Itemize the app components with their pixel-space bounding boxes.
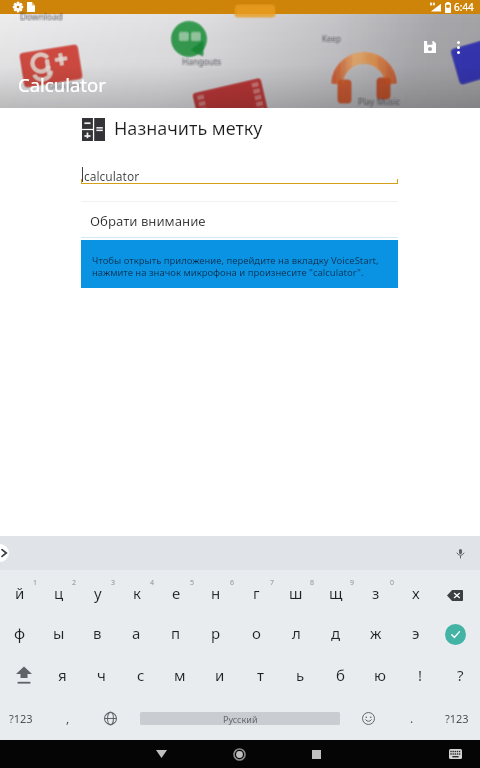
staticText: ?123 bbox=[9, 711, 33, 726]
staticText: Play Music bbox=[359, 97, 401, 109]
staticText: Play Music bbox=[357, 97, 399, 109]
staticText: 6 bbox=[230, 578, 235, 588]
staticText: Keep bbox=[321, 32, 340, 43]
button[interactable]: Shift bbox=[0, 654, 43, 696]
button[interactable]: ?123 bbox=[0, 696, 42, 740]
staticText: е bbox=[172, 583, 181, 603]
button[interactable]: а bbox=[117, 612, 156, 654]
button[interactable]: к bbox=[117, 570, 156, 612]
button[interactable]: Switch keyboard bbox=[443, 740, 467, 768]
button[interactable]: с bbox=[121, 654, 160, 696]
staticText: Hangouts bbox=[182, 56, 222, 68]
button[interactable]: More options bbox=[446, 35, 470, 59]
staticText: з bbox=[372, 583, 380, 603]
staticText: ш bbox=[289, 583, 303, 603]
staticText: Keep bbox=[322, 34, 341, 45]
button[interactable]: я bbox=[43, 654, 82, 696]
button[interactable]: ?123 bbox=[436, 696, 478, 740]
button[interactable]: з bbox=[356, 570, 396, 612]
staticText: в bbox=[93, 623, 102, 643]
button[interactable]: х bbox=[396, 570, 436, 612]
staticText: б bbox=[336, 665, 345, 685]
button[interactable]: Change language bbox=[90, 696, 130, 740]
button[interactable]: д bbox=[316, 612, 356, 654]
staticText: ? bbox=[457, 665, 464, 685]
staticText: Hangouts bbox=[183, 55, 223, 67]
button[interactable]: Backspace bbox=[436, 570, 480, 612]
button[interactable]: ю bbox=[360, 654, 400, 696]
button[interactable]: Emoji bbox=[348, 696, 388, 740]
staticText: а bbox=[132, 623, 141, 643]
button[interactable]: ш bbox=[276, 570, 316, 612]
staticText: у bbox=[94, 583, 102, 603]
button[interactable]: п bbox=[156, 612, 196, 654]
button[interactable]: Voice input bbox=[448, 541, 472, 565]
button[interactable]: ф bbox=[0, 612, 39, 654]
button[interactable]: э bbox=[396, 612, 436, 654]
button[interactable]: , bbox=[48, 696, 88, 740]
staticText: Play Music bbox=[358, 95, 400, 107]
button[interactable]: у bbox=[78, 570, 117, 612]
staticText: Google+ bbox=[48, 80, 82, 92]
staticText: Google+ bbox=[49, 80, 83, 92]
button[interactable]: ж bbox=[356, 612, 396, 654]
button[interactable]: ц bbox=[39, 570, 78, 612]
button[interactable]: Русский bbox=[140, 712, 340, 725]
button[interactable]: Done bbox=[436, 612, 480, 654]
staticText: Google+ bbox=[48, 81, 82, 93]
staticText: Обрати внимание bbox=[90, 212, 206, 230]
button[interactable]: Recent apps bbox=[298, 740, 334, 768]
button[interactable]: р bbox=[196, 612, 236, 654]
button[interactable]: в bbox=[78, 612, 117, 654]
staticText: Hangouts bbox=[181, 55, 221, 67]
button[interactable]: м bbox=[160, 654, 200, 696]
button[interactable]: й bbox=[0, 570, 39, 612]
button[interactable]: б bbox=[320, 654, 360, 696]
staticText: Keep bbox=[323, 33, 342, 44]
staticText: Keep bbox=[321, 34, 340, 45]
staticText: Download bbox=[19, 10, 62, 22]
button[interactable]: щ bbox=[316, 570, 356, 612]
staticText: г bbox=[253, 583, 260, 603]
button[interactable]: н bbox=[196, 570, 236, 612]
staticText: Hangouts bbox=[183, 57, 223, 69]
staticText: 1 bbox=[33, 578, 38, 588]
button[interactable]: Чтобы открыть приложение, перейдите на в… bbox=[81, 240, 398, 288]
staticText: Play Music bbox=[358, 96, 400, 108]
staticText: Чтобы открыть приложение, перейдите на в… bbox=[92, 254, 379, 279]
button[interactable]: Back bbox=[143, 740, 179, 768]
button[interactable]: ч bbox=[82, 654, 121, 696]
staticText: ю bbox=[374, 665, 386, 685]
staticText: н bbox=[211, 583, 221, 603]
staticText: Google+ bbox=[49, 79, 83, 91]
button[interactable]: ы bbox=[39, 612, 78, 654]
button[interactable]: . bbox=[392, 696, 432, 740]
staticText: Download bbox=[21, 9, 64, 21]
button[interactable]: о bbox=[236, 612, 276, 654]
staticText: ж bbox=[370, 623, 382, 643]
button[interactable]: и bbox=[200, 654, 240, 696]
button[interactable]: л bbox=[276, 612, 316, 654]
button[interactable]: г bbox=[236, 570, 276, 612]
staticText: Keep bbox=[322, 32, 341, 43]
staticText: Download bbox=[21, 11, 64, 23]
button[interactable]: е bbox=[156, 570, 196, 612]
button[interactable]: т bbox=[240, 654, 280, 696]
staticText: Download bbox=[20, 9, 63, 21]
button[interactable]: ? bbox=[440, 654, 480, 696]
staticText: 4 bbox=[150, 578, 155, 588]
staticText: Download bbox=[19, 9, 62, 21]
staticText: л bbox=[292, 623, 301, 643]
staticText: Calculator bbox=[18, 72, 106, 97]
staticText: Hangouts bbox=[183, 56, 223, 68]
button[interactable]: Expand suggestions bbox=[0, 544, 9, 562]
staticText: ц bbox=[54, 583, 64, 603]
button[interactable]: Home bbox=[221, 740, 257, 768]
staticText: и bbox=[215, 665, 225, 685]
button[interactable]: ь bbox=[280, 654, 320, 696]
staticText: Download bbox=[20, 10, 63, 22]
staticText: Keep bbox=[321, 33, 340, 44]
button[interactable]: Save bbox=[418, 35, 442, 59]
button[interactable]: ! bbox=[400, 654, 440, 696]
staticText: Hangouts bbox=[182, 57, 222, 69]
